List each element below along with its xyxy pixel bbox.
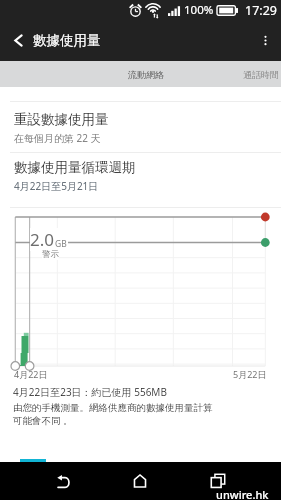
staticText: 警示 (42, 249, 59, 260)
button[interactable]: 重設數據使用量 (0, 102, 281, 152)
staticText: GB (55, 238, 67, 250)
staticText: 4月22日至23日：約已使用 556MB (13, 385, 167, 399)
button[interactable]: More options (249, 20, 281, 61)
button[interactable]: Recent apps (195, 462, 241, 500)
staticText: 由您的手機測量。網絡供應商的數據使用量計算 可能會不同 。 (13, 402, 213, 427)
button[interactable]: 流動網絡 (100, 61, 192, 87)
button[interactable]: 4月22日至5月21日 (14, 179, 99, 193)
staticText: 數據使用量 (33, 32, 101, 49)
button[interactable]: 通話時間 (215, 61, 281, 87)
staticText: unwire.hk (216, 487, 269, 500)
staticText: 在每個月的第 22 天 (14, 131, 101, 145)
button[interactable]: Back (40, 462, 86, 500)
staticText: 4月22日 (14, 368, 48, 380)
staticText: 重設數據使用量 (14, 111, 109, 128)
button[interactable]: Back (0, 20, 33, 61)
button[interactable]: Home (117, 462, 163, 500)
staticText: 100% (184, 2, 214, 18)
staticText: 5月22日 (233, 368, 267, 380)
staticText: 數據使用量循環週期 (14, 159, 136, 176)
staticText: 2.0 (30, 228, 55, 251)
staticText: 17:29 (245, 2, 277, 19)
staticText: 通話時間 (243, 69, 279, 80)
staticText: 流動網絡 (128, 69, 164, 80)
